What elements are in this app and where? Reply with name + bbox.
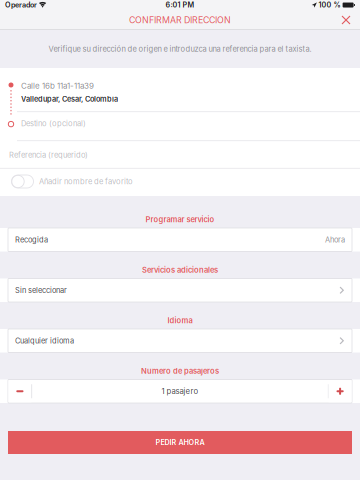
staticText: Operador <box>5 1 37 9</box>
staticText: Ahora <box>325 235 345 244</box>
staticText: Servicios adicionales <box>142 265 218 274</box>
staticText: PEDIR AHORA <box>155 438 204 447</box>
staticText: Destino (opcional) <box>21 119 86 128</box>
staticText: 6:01 PM <box>165 1 194 9</box>
button[interactable]: Cerrar <box>336 10 356 30</box>
staticText: Número de pasajeros <box>141 366 219 375</box>
staticText: Referencia (requerido) <box>9 150 88 160</box>
staticText: 1 pasajero <box>161 387 198 396</box>
staticText: Idioma <box>167 316 192 325</box>
staticText: Añadir nombre de favorito <box>39 177 133 186</box>
staticText: 100 % <box>319 1 341 9</box>
staticText: CONFIRMAR DIRECCION <box>129 15 231 25</box>
staticText: Recogida <box>15 235 48 244</box>
button[interactable]: PEDIR AHORA <box>0 431 360 454</box>
staticText: Programar servicio <box>145 215 214 224</box>
button[interactable]: Añadir pasajero <box>329 380 352 402</box>
staticText: Verifique su dirección de origen e intro… <box>48 44 311 54</box>
button[interactable]: Añadir nombre de favorito <box>11 175 33 188</box>
button[interactable]: Quitar pasajero <box>8 380 31 402</box>
staticText: Cualquier idioma <box>15 336 74 345</box>
button[interactable]: Sin seleccionar <box>0 278 360 302</box>
button[interactable]: Cualquier idioma <box>0 329 360 352</box>
button[interactable]: Recogida <box>0 228 360 251</box>
staticText: Valledupar, Cesar, Colombia <box>21 95 118 103</box>
staticText: Sin seleccionar <box>15 286 67 295</box>
staticText: Calle 16b 11a1-11a39 <box>21 81 94 91</box>
